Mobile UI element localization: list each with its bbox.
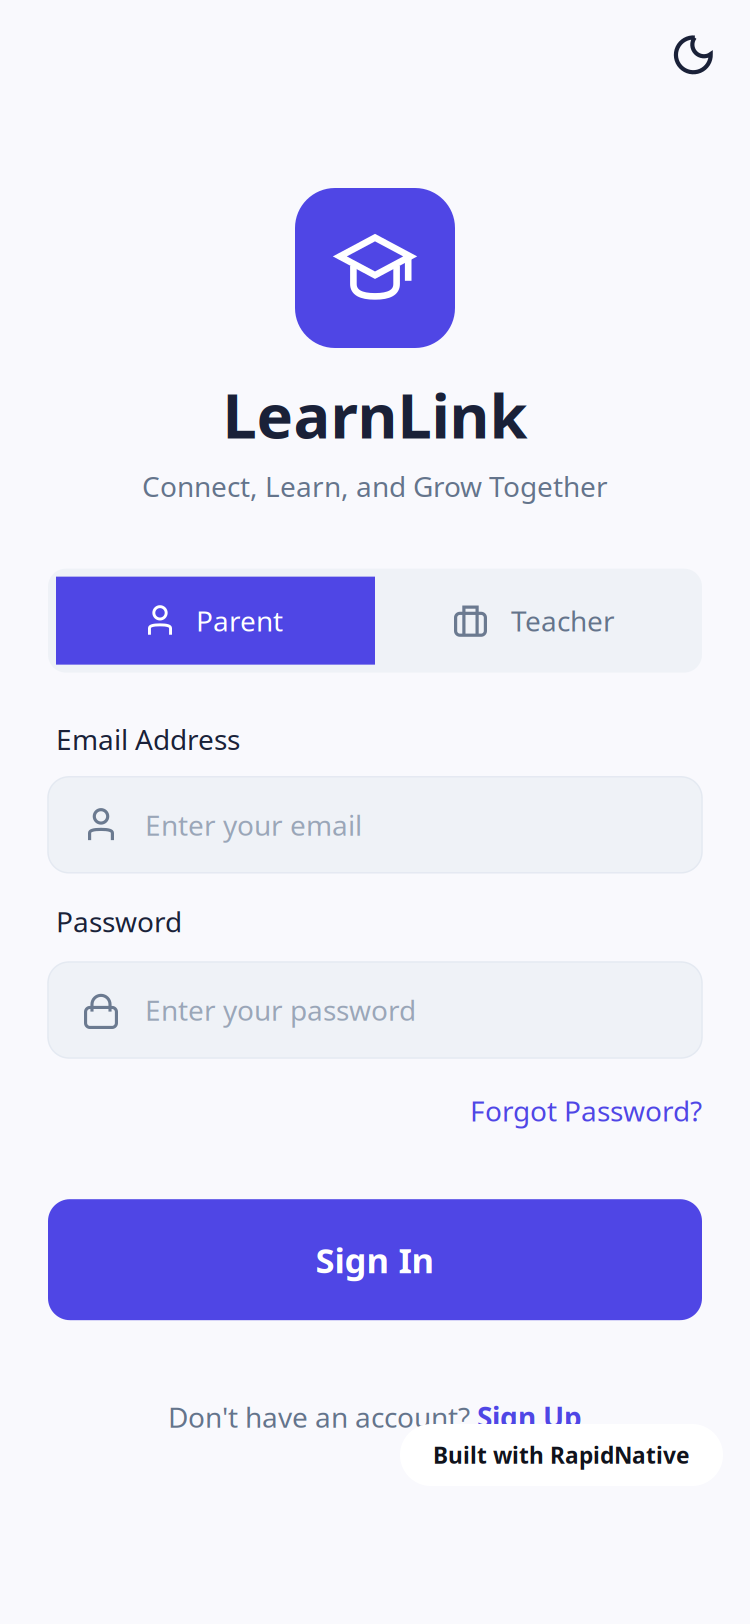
staticText: Enter your password	[145, 991, 416, 1029]
button[interactable]: Sign In	[48, 1199, 702, 1320]
staticText: Built with RapidNative	[433, 1440, 690, 1470]
button[interactable]: Built with RapidNative	[400, 1424, 723, 1486]
button[interactable]: Toggle dark mode	[669, 30, 721, 82]
staticText: Connect, Learn, and Grow Together	[142, 467, 608, 505]
button[interactable]: Enter your email	[48, 777, 702, 873]
staticText: Parent	[196, 602, 283, 639]
staticText: Don't have an account?	[168, 1398, 477, 1435]
button[interactable]: Parent	[56, 577, 375, 665]
staticText: Enter your email	[145, 806, 362, 843]
button[interactable]: Sign Up	[477, 1398, 582, 1435]
staticText: Forgot Password?	[470, 1092, 702, 1129]
button[interactable]: Teacher	[375, 577, 694, 665]
staticText: Password	[56, 903, 182, 940]
staticText: Sign Up	[477, 1398, 582, 1435]
staticText: Email Address	[56, 721, 240, 758]
button[interactable]: Forgot Password?	[470, 1092, 702, 1129]
staticText: Teacher	[511, 602, 615, 639]
button[interactable]: Enter your password	[48, 962, 702, 1058]
staticText: LearnLink	[222, 374, 527, 455]
staticText: Sign In	[315, 1237, 434, 1283]
